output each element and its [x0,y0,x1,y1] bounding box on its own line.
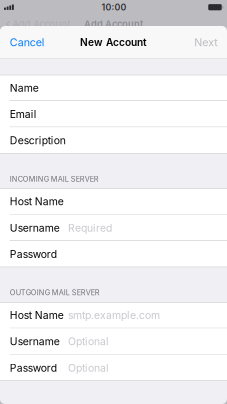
button[interactable]: Next [186,26,227,59]
staticText: 10:00 [101,2,126,12]
staticText: Optional [68,362,109,374]
staticText: New Account [80,36,147,48]
staticText: Description [10,134,66,147]
staticText: INCOMING MAIL SERVER [10,174,99,183]
staticText: Cancel [10,36,45,49]
button[interactable]: Host Name [0,188,227,215]
staticText: Add Account [12,18,70,30]
staticText: Optional [68,335,109,348]
staticText: Username [10,222,60,234]
staticText: Email [10,108,37,120]
staticText: Password [10,362,57,374]
button[interactable]: Username [0,215,227,241]
staticText: Host Name [10,195,64,208]
staticText: Name [10,82,39,94]
staticText: Password [10,248,57,260]
staticText: Host Name [10,309,64,322]
button[interactable]: Password [0,241,227,267]
button[interactable]: Email [0,101,227,127]
button[interactable]: Username [0,328,227,355]
staticText: Add Account [84,18,143,30]
staticText: Next [194,36,217,49]
staticText: smtp.example.com [68,309,160,322]
button[interactable]: Password [0,355,227,381]
staticText: Required [68,222,112,234]
button[interactable]: Description [0,127,227,154]
button[interactable]: Name [0,75,227,101]
staticText: OUTGOING MAIL SERVER [10,288,100,297]
button[interactable]: Host Name [0,302,227,328]
staticText: Username [10,335,60,348]
button[interactable]: Cancel [0,26,53,59]
